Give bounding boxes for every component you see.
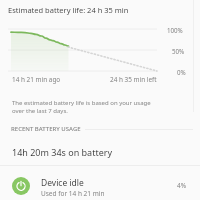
staticText: RECENT BATTERY USAGE <box>11 125 81 133</box>
staticText: Estimated battery life: 24 h 35 min <box>8 5 129 15</box>
staticText: 14 h 21 min ago <box>12 75 61 84</box>
staticText: Used for 14 h 21 min <box>41 189 105 198</box>
staticText: 100% <box>167 26 183 34</box>
staticText: 0% <box>177 68 186 76</box>
staticText: 24 h 35 min left <box>110 75 157 84</box>
button[interactable]: Device idle <box>0 167 200 200</box>
staticText: 14h 20m 34s on battery <box>12 146 113 158</box>
staticText: Device idle <box>41 177 84 189</box>
staticText: 50% <box>172 47 185 55</box>
staticText: 4% <box>177 181 186 190</box>
staticText: The estimated battery life is based on y… <box>12 99 151 115</box>
